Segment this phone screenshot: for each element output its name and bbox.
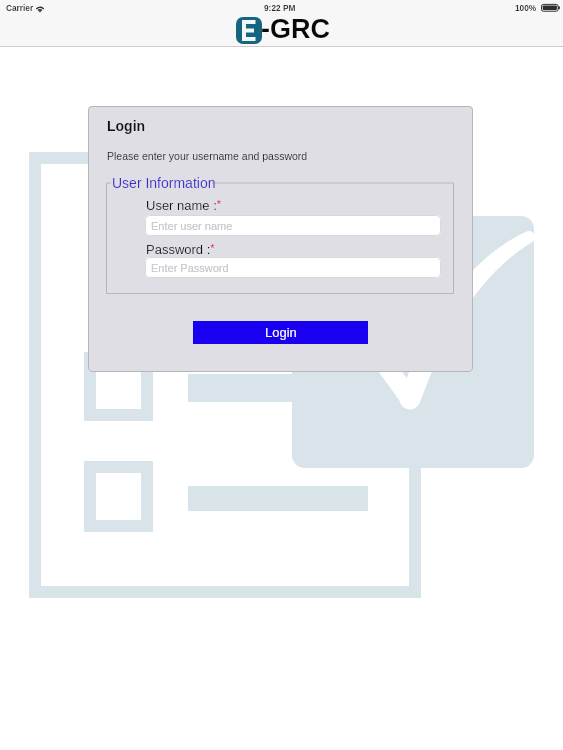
button[interactable]: Enter Password [145,257,441,278]
staticText: Login [107,118,146,134]
staticText: -GRC [261,14,330,41]
button[interactable]: Login [193,321,368,344]
staticText: Please enter your username and password [107,150,308,162]
button[interactable]: Enter user name [145,215,441,236]
staticText: User name :* [146,198,222,213]
staticText: Enter user name [151,220,233,232]
staticText: 9:22 PM [264,3,296,12]
staticText: Enter Password [151,262,229,274]
other: E-GRC logo [236,17,262,44]
staticText: User Information [112,175,216,191]
staticText: Login [265,325,297,340]
staticText: Password :* [146,242,215,257]
other: Wi-Fi signal [35,3,46,13]
staticText: Carrier [6,3,34,12]
staticText: 100% [515,3,537,12]
other: Battery full [540,3,560,12]
